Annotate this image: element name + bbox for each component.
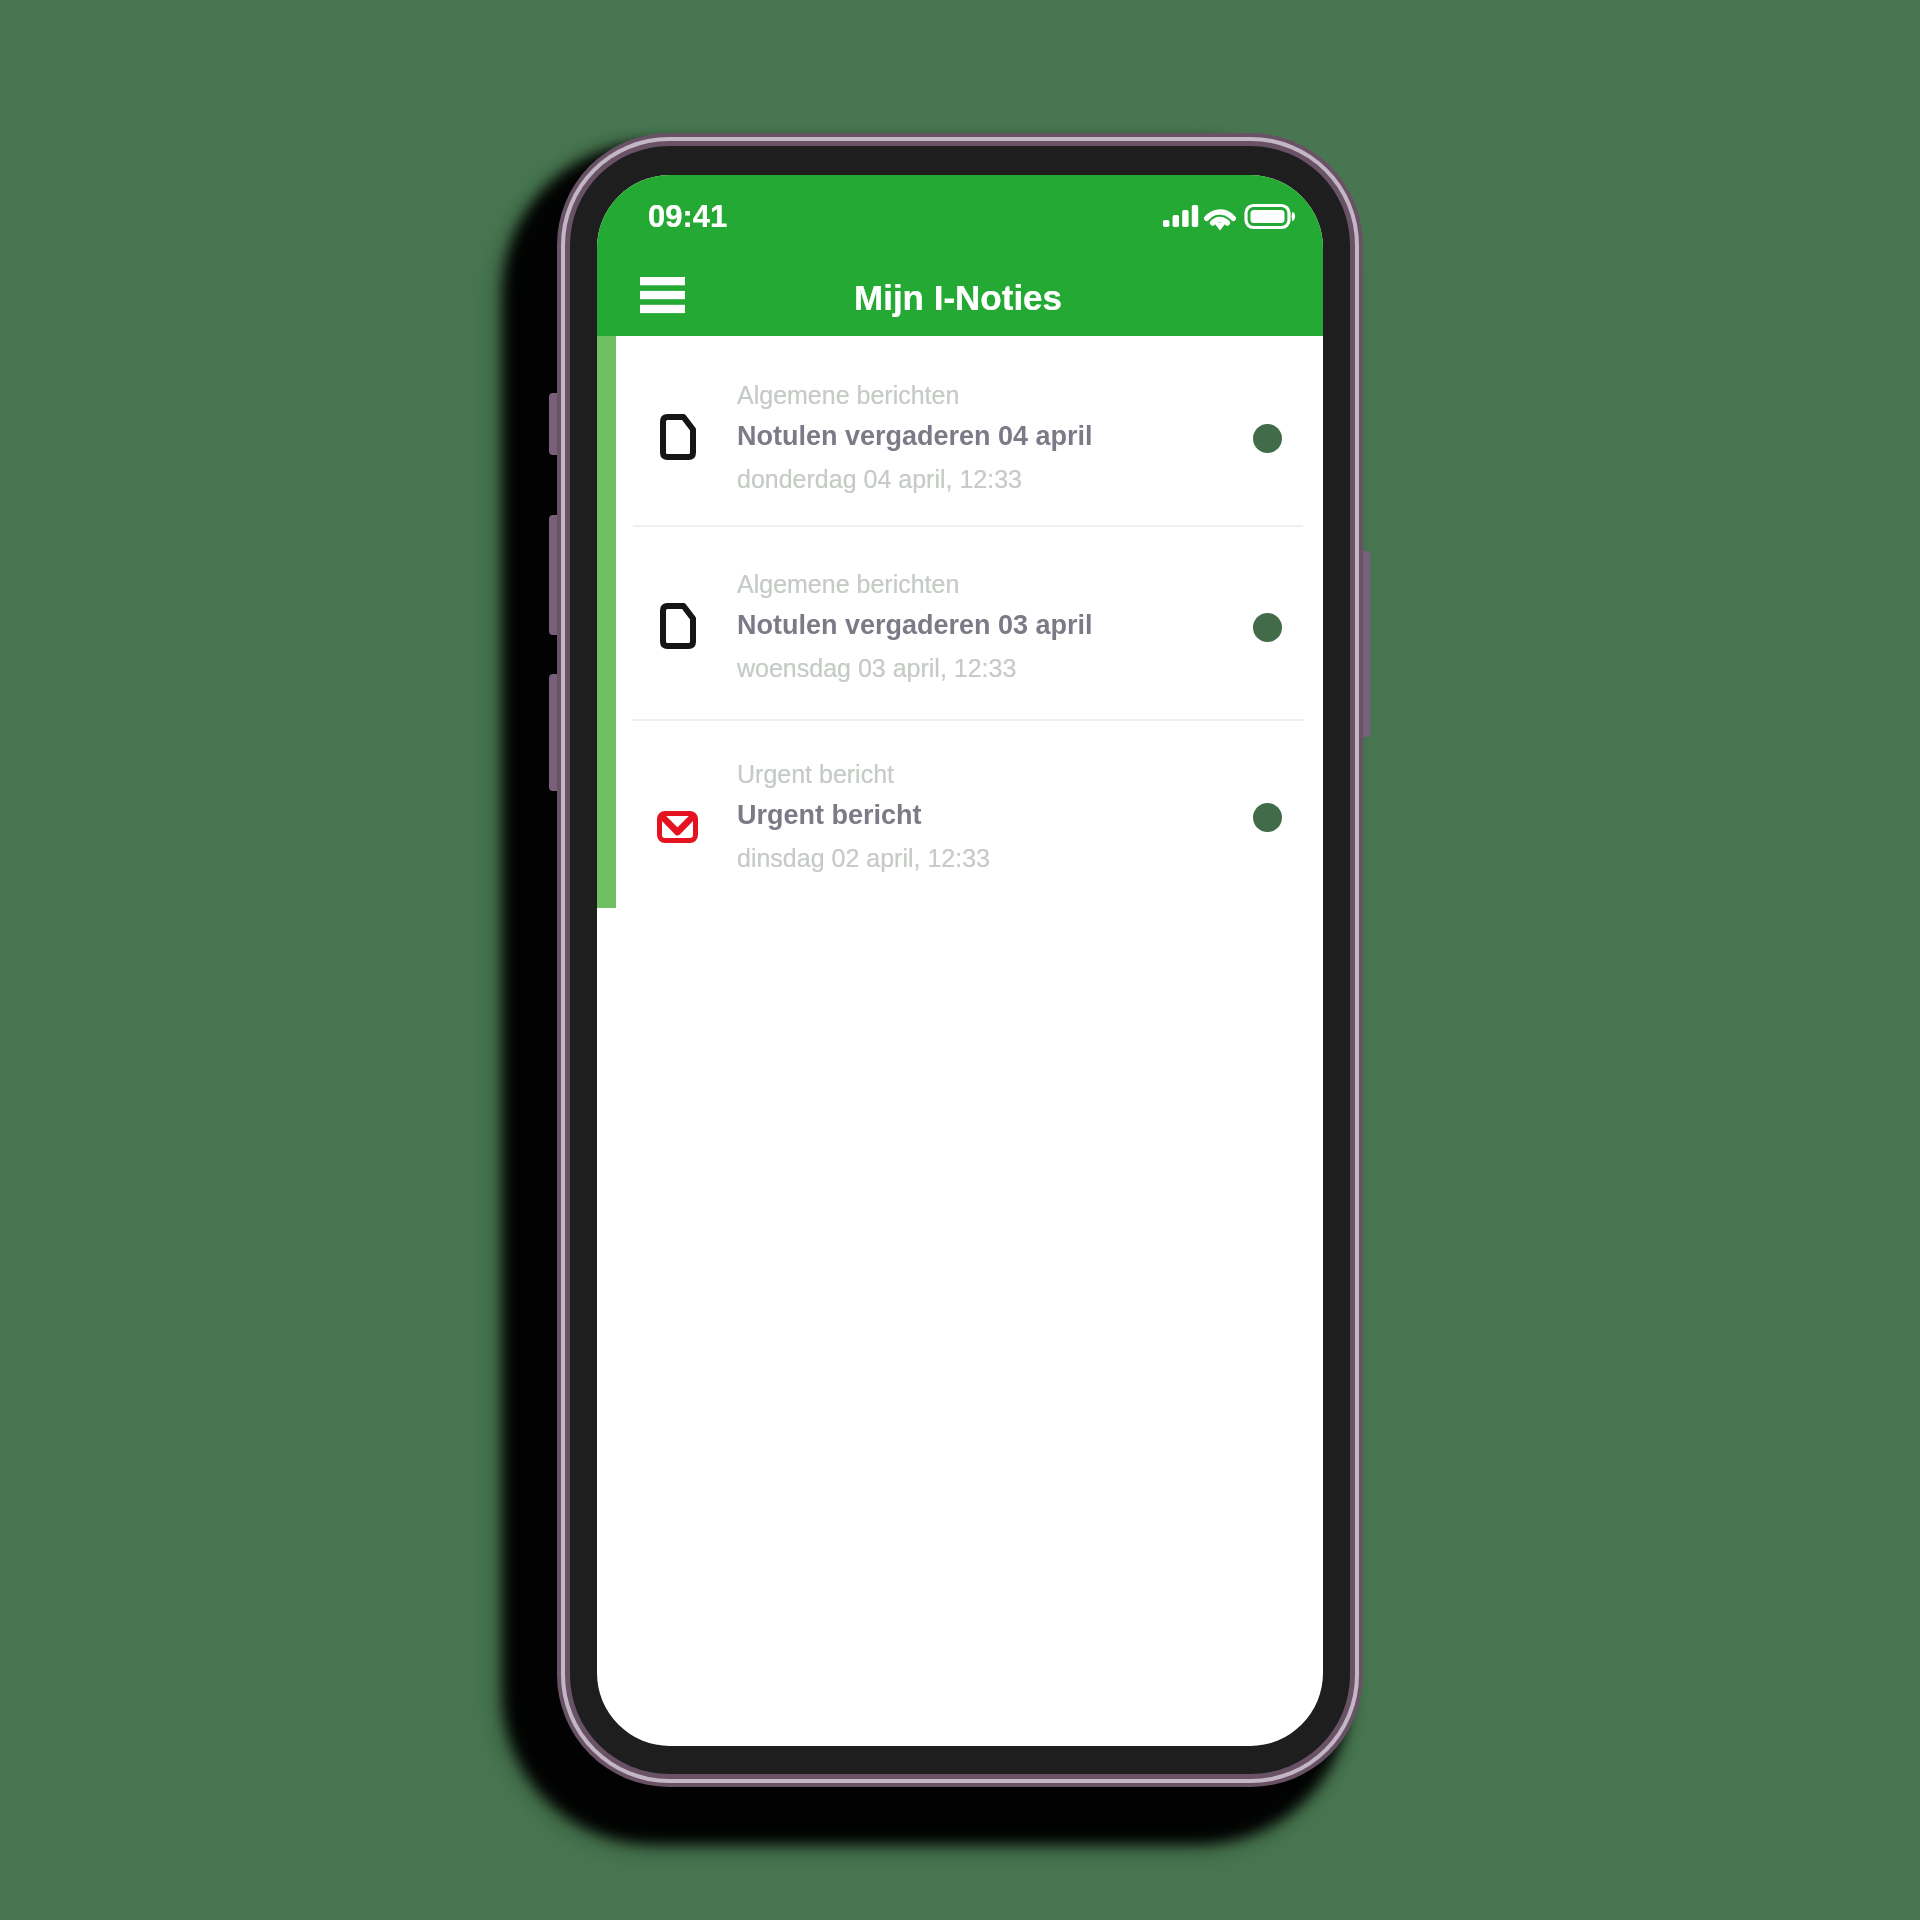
staticText: woensdag 03 april, 12:33	[737, 654, 1017, 682]
staticText: dinsdag 02 april, 12:33	[737, 844, 990, 872]
staticText: Mijn I-Noties	[854, 278, 1063, 317]
staticText: Algemene berichten	[737, 570, 960, 598]
staticText: Algemene berichten	[737, 381, 960, 409]
staticText: Urgent bericht	[737, 800, 922, 830]
staticText: 09:41	[648, 199, 728, 234]
button[interactable]: Algemene berichten	[597, 525, 1323, 715]
staticText: Notulen vergaderen 04 april	[737, 421, 1093, 451]
staticText: Notulen vergaderen 03 april	[737, 610, 1093, 640]
button[interactable]: Algemene berichten	[597, 336, 1323, 526]
button[interactable]: Open navigation menu	[619, 257, 705, 333]
staticText: donderdag 04 april, 12:33	[737, 465, 1022, 493]
button[interactable]: Urgent bericht	[597, 715, 1323, 905]
staticText: Urgent bericht	[737, 760, 895, 788]
